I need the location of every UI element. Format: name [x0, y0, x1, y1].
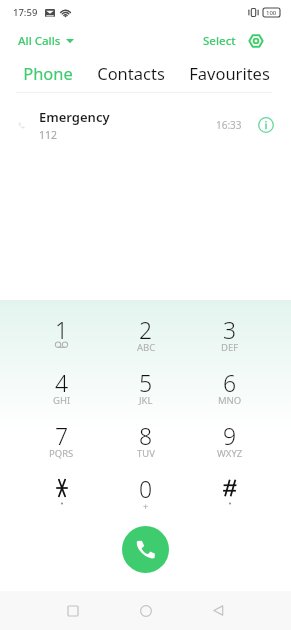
staticText: GHI [53, 394, 71, 407]
staticText: 9 [223, 420, 237, 451]
button[interactable]: 0 [104, 473, 188, 526]
button[interactable]: 5 [104, 367, 188, 420]
staticText: All Calls [18, 33, 61, 49]
staticText: WXYZ [217, 447, 243, 460]
staticText: Phone [23, 62, 73, 84]
button[interactable] [188, 473, 272, 526]
staticText: 112 [39, 128, 58, 142]
staticText: 5 [139, 367, 153, 398]
button[interactable]: Call [122, 526, 169, 573]
staticText: + [143, 500, 149, 513]
staticText: 4 [55, 367, 69, 398]
button[interactable]: Select [197, 28, 242, 54]
button[interactable]: Emergency [0, 101, 291, 149]
staticText: 17:59 [13, 6, 38, 19]
staticText: 0 [139, 473, 153, 504]
staticText: 7 [55, 420, 69, 451]
staticText: 1 [55, 314, 69, 345]
staticText: DEF [221, 341, 239, 354]
staticText: Emergency [39, 108, 110, 126]
button[interactable]: Recents [55, 593, 90, 628]
button[interactable]: Home [128, 593, 163, 628]
button[interactable]: Call details [255, 114, 277, 136]
button[interactable]: 6 [188, 367, 272, 420]
button[interactable]: 7 [19, 420, 104, 473]
staticText: Favourites [189, 62, 270, 84]
staticText: PQRS [49, 447, 74, 460]
button[interactable]: 9 [188, 420, 272, 473]
staticText: Select [203, 33, 236, 49]
staticText: Contacts [97, 62, 165, 84]
button[interactable]: Phone [11, 58, 85, 88]
button[interactable]: 3 [188, 314, 272, 367]
staticText: 16:33 [216, 118, 242, 132]
staticText: 3 [223, 314, 237, 345]
staticText: 8 [139, 420, 153, 451]
button[interactable]: Contacts [85, 58, 177, 88]
staticText: MNO [218, 394, 242, 407]
staticText: 6 [223, 367, 237, 398]
staticText: JKL [139, 394, 153, 407]
staticText: TUV [137, 447, 155, 460]
button[interactable]: All Calls [10, 28, 82, 54]
button[interactable]: 8 [104, 420, 188, 473]
staticText: 2 [139, 314, 153, 345]
staticText: 100 [266, 9, 277, 17]
button[interactable]: 2 [104, 314, 188, 367]
staticText: ABC [137, 341, 156, 354]
button[interactable] [19, 473, 104, 526]
button[interactable]: Settings [246, 31, 266, 51]
button[interactable]: Favourites [177, 58, 282, 88]
button[interactable]: 4 [19, 367, 104, 420]
button[interactable]: Back [201, 593, 236, 628]
button[interactable]: 1 [19, 314, 104, 367]
